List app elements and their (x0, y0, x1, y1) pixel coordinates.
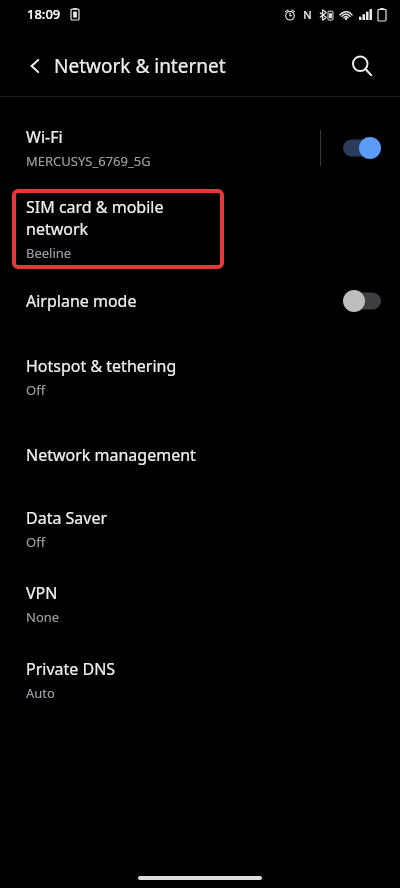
button[interactable]: Airplane mode (0, 276, 400, 326)
button[interactable]: VPN (0, 571, 400, 637)
staticText: Off (26, 381, 46, 399)
staticText: Beeline (26, 244, 72, 262)
button[interactable]: Network management (0, 430, 400, 480)
staticText: Data Saver (26, 507, 108, 529)
staticText: 18:09 (27, 5, 61, 23)
staticText: Network & internet (54, 53, 226, 79)
button[interactable]: SIM card & mobile network (14, 191, 222, 267)
button[interactable]: Toggle Wi-Fi (342, 133, 382, 163)
staticText: N (303, 7, 312, 22)
staticText: VPN (26, 582, 58, 604)
button[interactable]: Private DNS (0, 647, 400, 713)
button[interactable]: Back (17, 48, 53, 84)
staticText: Network management (26, 444, 196, 466)
button[interactable]: Toggle Airplane mode (342, 286, 382, 316)
staticText: MERCUSYS_6769_5G (26, 152, 151, 170)
button[interactable]: Wi-Fi (0, 112, 400, 184)
staticText: Hotspot & tethering (26, 355, 177, 377)
staticText: SIM card & mobile network (26, 196, 222, 240)
staticText: Private DNS (26, 658, 116, 680)
button[interactable]: Search (342, 46, 382, 86)
button[interactable]: Hotspot & tethering (0, 344, 400, 410)
staticText: None (26, 608, 60, 626)
staticText: Auto (26, 684, 55, 702)
staticText: Wi-Fi (26, 126, 63, 148)
staticText: Airplane mode (26, 290, 137, 312)
staticText: Off (26, 533, 46, 551)
button[interactable]: Data Saver (0, 496, 400, 562)
